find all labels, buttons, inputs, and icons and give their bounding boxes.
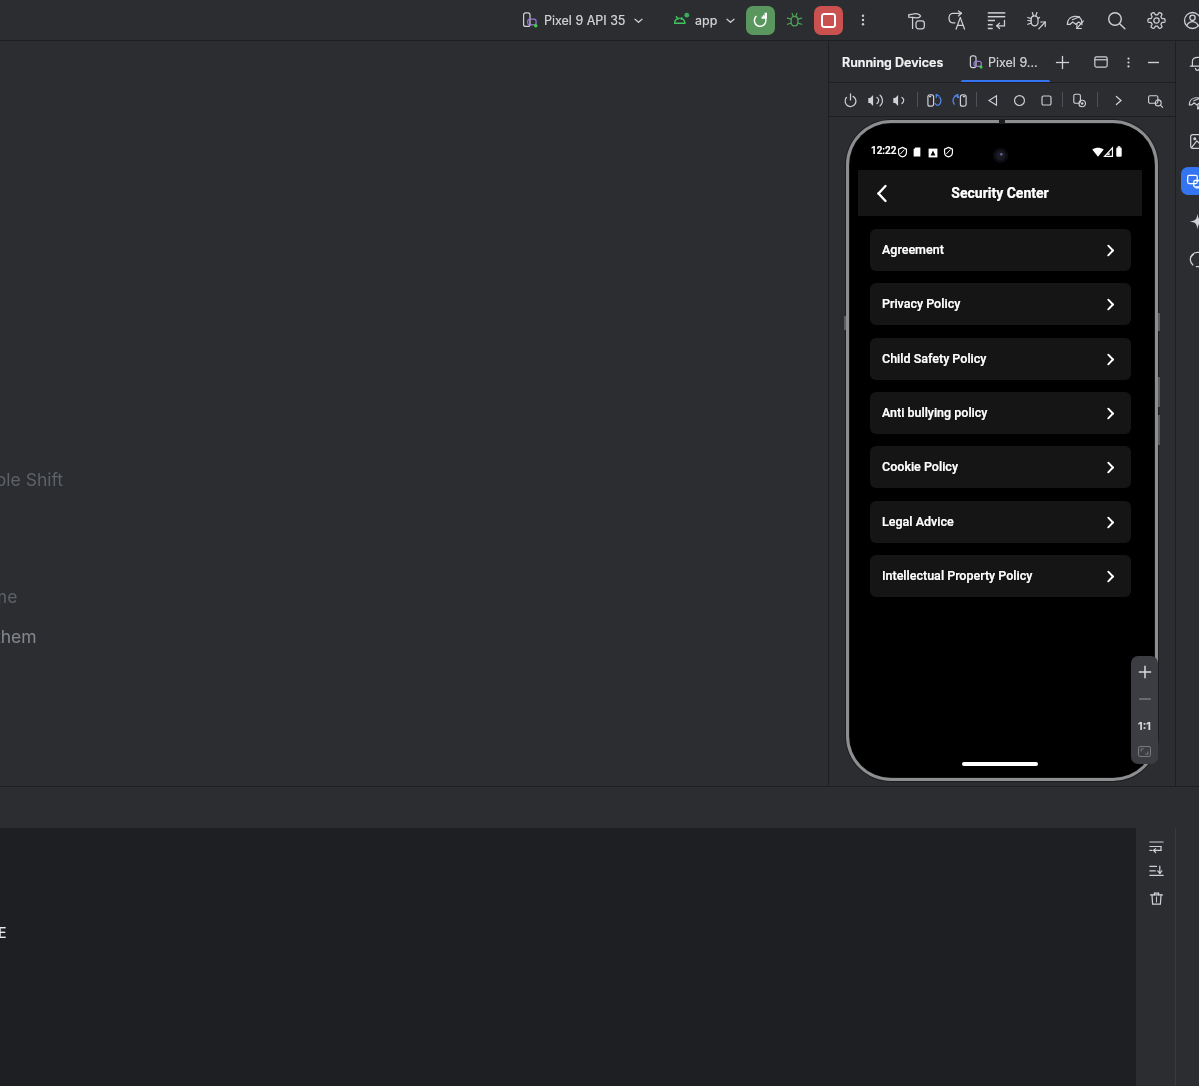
button[interactable]: More options — [851, 8, 875, 32]
button[interactable]: Profiler — [1021, 5, 1051, 35]
button[interactable]: App Inspection — [1061, 5, 1091, 35]
button[interactable]: Zoom out — [1131, 685, 1158, 712]
staticText: Cookie Policy — [882, 459, 959, 474]
button[interactable]: Clear all — [1145, 887, 1167, 909]
staticText: Anti bullying policy — [882, 405, 988, 420]
button[interactable]: Cookie Policy — [870, 446, 1131, 488]
button[interactable]: Minimize — [1140, 49, 1166, 75]
button[interactable]: app — [670, 5, 740, 35]
button[interactable]: Running Devices — [1181, 167, 1199, 195]
button[interactable]: Search — [1101, 5, 1131, 35]
staticText: app — [695, 13, 718, 28]
staticText: 1:1 — [1138, 719, 1151, 732]
button[interactable]: Legal Advice — [870, 501, 1131, 543]
button[interactable]: Rerun — [746, 6, 775, 35]
button[interactable]: Pixel 9 API 35 — [518, 5, 648, 35]
button[interactable]: Intellectual Property Policy — [870, 555, 1131, 597]
button[interactable]: Overview — [1033, 87, 1059, 113]
button[interactable]: Agreement — [870, 229, 1131, 271]
button[interactable]: Rotate left — [921, 87, 947, 113]
button[interactable]: Settings — [1141, 5, 1171, 35]
button[interactable]: Notifications — [1181, 48, 1199, 76]
button[interactable]: Rotate right — [946, 87, 972, 113]
staticText: Pixel 9 API 35 — [544, 13, 626, 28]
button[interactable]: 1:1 — [1131, 712, 1158, 739]
button[interactable]: Back — [980, 87, 1006, 113]
button[interactable]: Privacy Policy — [870, 283, 1131, 325]
staticText: Security Center — [858, 185, 1142, 201]
button[interactable]: Back — [868, 179, 896, 207]
button[interactable]: Volume down — [887, 87, 913, 113]
staticText: Child Safety Policy — [882, 351, 987, 366]
button[interactable]: Apply changes — [941, 5, 971, 35]
button[interactable]: Power — [837, 87, 863, 113]
button[interactable]: Build — [902, 5, 932, 35]
staticText: Navigation Bar Alt+Home — [0, 586, 18, 607]
staticText: Running Devices — [842, 55, 944, 70]
button[interactable]: Soft-wrap — [1145, 835, 1167, 857]
button[interactable]: Zoom to fit — [1131, 738, 1158, 764]
button[interactable]: Profiler — [1181, 87, 1199, 115]
button[interactable]: Anti bullying policy — [870, 392, 1131, 434]
button[interactable]: Child Safety Policy — [870, 338, 1131, 380]
button[interactable]: Stop — [814, 6, 843, 35]
staticText: Agreement — [882, 242, 944, 257]
button[interactable]: Volume up — [862, 87, 888, 113]
button[interactable]: Add device — [1049, 49, 1075, 75]
button[interactable]: Logcat — [981, 5, 1011, 35]
button[interactable]: More — [1105, 87, 1131, 113]
button[interactable]: Gemini — [1181, 207, 1199, 235]
button[interactable]: Layout — [1088, 49, 1114, 75]
staticText: Drop files here to open them — [0, 626, 37, 647]
button[interactable]: Scroll to end — [1145, 860, 1167, 882]
staticText: Privacy Policy — [882, 296, 961, 311]
button[interactable]: Screenshot — [1142, 87, 1168, 113]
staticText: E — [0, 924, 7, 941]
button[interactable]: Home — [1006, 87, 1032, 113]
button[interactable]: Debug — [780, 6, 809, 35]
button[interactable]: Gradle — [1181, 245, 1199, 273]
staticText: Search Everywhere Double Shift — [0, 469, 64, 490]
button[interactable]: Pixel 9... — [969, 49, 1038, 75]
staticText: Pixel 9... — [988, 55, 1038, 70]
button[interactable]: Zoom in — [1131, 658, 1158, 685]
button[interactable]: Device settings — [1066, 87, 1092, 113]
staticText: 12:22 — [871, 145, 897, 157]
button[interactable]: Account — [1177, 5, 1199, 35]
staticText: Legal Advice — [882, 514, 954, 529]
button[interactable]: Options — [1115, 49, 1141, 75]
button[interactable]: Device Manager — [1181, 127, 1199, 155]
staticText: Intellectual Property Policy — [882, 568, 1033, 583]
